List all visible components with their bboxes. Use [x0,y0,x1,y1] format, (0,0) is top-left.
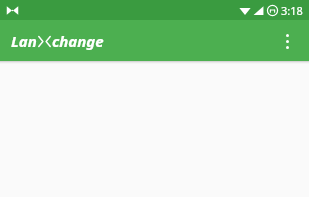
button[interactable]: Lan [11,31,104,51]
staticText: Lan [11,31,37,51]
staticText: 3:18 [281,3,303,18]
staticText: change [52,31,104,51]
button[interactable]: More options [269,23,305,59]
